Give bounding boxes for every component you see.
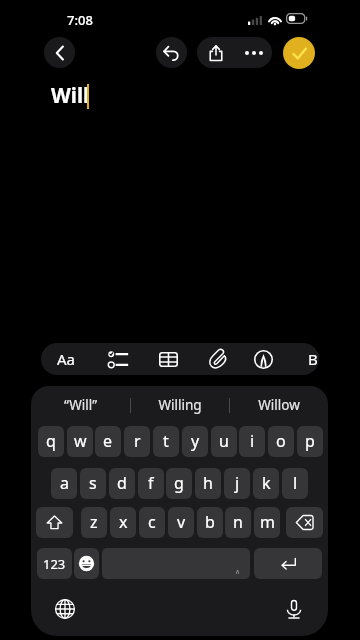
staticText: Aa xyxy=(57,349,76,369)
staticText: ∧ xyxy=(235,568,241,576)
button[interactable]: Text format xyxy=(45,343,87,375)
staticText: m xyxy=(260,511,275,533)
button[interactable]: u xyxy=(211,426,237,457)
staticText: 7:08 xyxy=(67,11,93,29)
button[interactable]: d xyxy=(109,468,135,499)
staticText: “Will” xyxy=(64,396,97,414)
button[interactable]: o xyxy=(268,426,294,457)
button[interactable]: Willow xyxy=(230,390,328,420)
staticText: i xyxy=(250,430,255,452)
staticText: Willow xyxy=(258,396,300,414)
button[interactable]: k xyxy=(253,468,279,499)
button[interactable]: f xyxy=(138,468,164,499)
button[interactable]: h xyxy=(195,468,221,499)
button[interactable]: Shift xyxy=(36,507,73,538)
staticText: p xyxy=(305,430,315,452)
staticText: h xyxy=(203,472,213,494)
staticText: r xyxy=(134,430,141,452)
button[interactable]: Emoji xyxy=(74,548,99,579)
button[interactable]: Share xyxy=(197,37,235,68)
button[interactable]: g xyxy=(166,468,192,499)
staticText: t xyxy=(163,430,169,452)
staticText: z xyxy=(90,511,98,533)
button[interactable]: s xyxy=(80,468,106,499)
button[interactable]: Done xyxy=(283,37,315,69)
staticText: 123 xyxy=(43,555,66,573)
staticText: s xyxy=(89,472,97,494)
staticText: f xyxy=(148,472,154,494)
button[interactable]: c xyxy=(139,507,165,538)
button[interactable]: Attach xyxy=(192,343,242,375)
button[interactable]: z xyxy=(81,507,107,538)
staticText: w xyxy=(74,430,87,452)
staticText: j xyxy=(235,472,240,494)
button[interactable]: 123 xyxy=(37,548,72,579)
button[interactable]: Table xyxy=(143,343,193,375)
staticText: l xyxy=(293,472,298,494)
button[interactable]: n xyxy=(225,507,251,538)
staticText: o xyxy=(276,430,286,452)
staticText: B xyxy=(308,349,318,369)
button[interactable]: x xyxy=(110,507,136,538)
button[interactable]: m xyxy=(254,507,280,538)
staticText: a xyxy=(60,472,69,494)
button[interactable]: r xyxy=(124,426,150,457)
staticText: k xyxy=(262,472,271,494)
button[interactable]: a xyxy=(51,468,77,499)
staticText: c xyxy=(148,511,156,533)
button[interactable]: w xyxy=(67,426,93,457)
button[interactable]: Voice input xyxy=(277,592,311,626)
button[interactable]: Bold xyxy=(301,343,319,375)
staticText: Willing xyxy=(158,396,202,414)
button[interactable]: l xyxy=(282,468,308,499)
staticText: g xyxy=(174,472,184,494)
button[interactable]: Backspace xyxy=(286,507,323,538)
button[interactable]: Willing xyxy=(131,390,229,420)
button[interactable]: Undo xyxy=(156,37,187,68)
button[interactable]: Change keyboard language xyxy=(48,592,82,626)
button[interactable]: t xyxy=(153,426,179,457)
button[interactable]: Draw xyxy=(238,343,288,375)
staticText: n xyxy=(233,511,243,533)
button[interactable]: More options xyxy=(235,37,272,68)
button[interactable]: Return xyxy=(254,548,322,579)
staticText: d xyxy=(117,472,127,494)
staticText: e xyxy=(103,430,113,452)
button[interactable]: Back xyxy=(44,37,75,68)
staticText: u xyxy=(219,430,229,452)
button[interactable]: b xyxy=(197,507,223,538)
button[interactable]: p xyxy=(297,426,323,457)
button[interactable]: y xyxy=(182,426,208,457)
button[interactable]: Checklist xyxy=(92,343,142,375)
button[interactable]: q xyxy=(38,426,64,457)
staticText: v xyxy=(177,511,186,533)
button[interactable]: e xyxy=(95,426,121,457)
staticText: b xyxy=(205,511,215,533)
button[interactable]: i xyxy=(239,426,265,457)
button[interactable]: v xyxy=(168,507,194,538)
staticText: y xyxy=(191,430,200,452)
staticText: x xyxy=(119,511,128,533)
button[interactable]: Space xyxy=(102,548,250,579)
staticText: q xyxy=(46,430,56,452)
button[interactable]: j xyxy=(224,468,250,499)
staticText: Will xyxy=(51,81,90,109)
button[interactable]: “Will” xyxy=(31,390,130,420)
